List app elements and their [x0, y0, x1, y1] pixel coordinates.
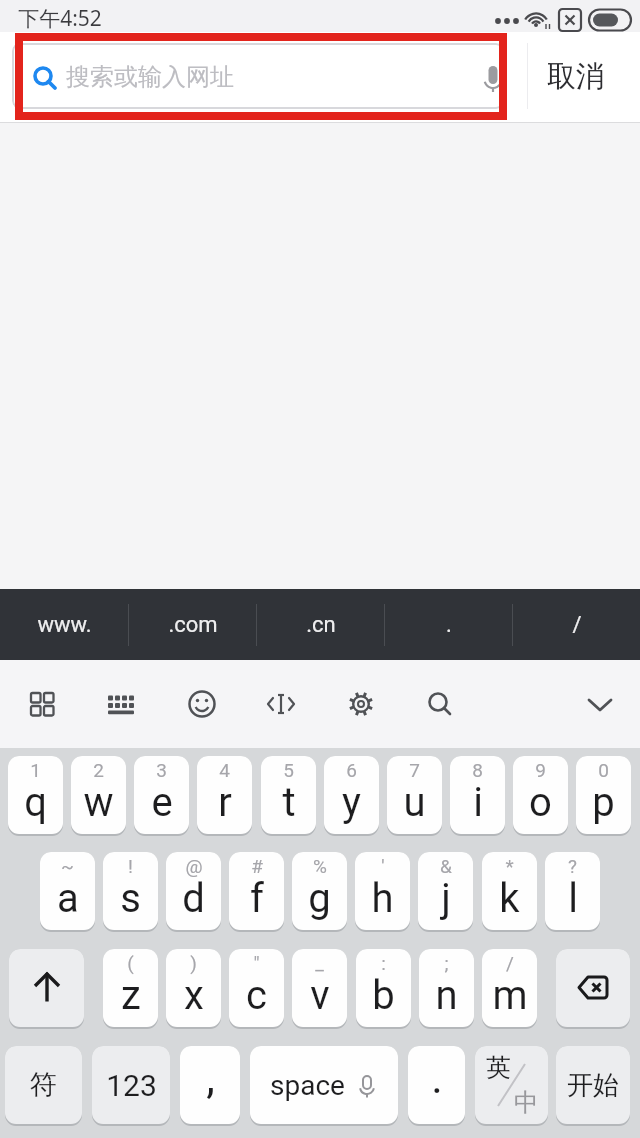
button[interactable]: 取消 — [527, 43, 624, 109]
button[interactable]: 开始 — [556, 1046, 630, 1124]
button[interactable]: 123 — [92, 1046, 170, 1124]
staticText: 取消 — [547, 58, 605, 95]
staticText: a — [57, 875, 79, 922]
button[interactable]: 7 — [387, 756, 442, 834]
button[interactable]: 2 — [71, 756, 126, 834]
button[interactable]: ( — [103, 949, 158, 1027]
staticText: d — [182, 875, 205, 922]
staticText: ( — [127, 952, 134, 974]
button[interactable]: ' — [355, 852, 410, 930]
staticText: 123 — [106, 1068, 157, 1103]
button[interactable]: 5 — [261, 756, 316, 834]
button[interactable]: 1 — [8, 756, 63, 834]
staticText: ! — [128, 855, 133, 877]
staticText: c — [246, 972, 267, 1019]
staticText: n — [435, 972, 458, 1019]
button[interactable]: 6 — [324, 756, 379, 834]
button[interactable]: " — [229, 949, 284, 1027]
staticText: q — [24, 779, 47, 826]
staticText: @ — [185, 855, 203, 877]
staticText: & — [440, 855, 452, 877]
button[interactable]: .com — [129, 589, 256, 660]
staticText: z — [121, 972, 141, 1019]
staticText: ) — [190, 952, 197, 974]
button[interactable]: 9 — [513, 756, 568, 834]
staticText: p — [592, 779, 615, 826]
button[interactable]: 8 — [450, 756, 505, 834]
button[interactable]: ) — [166, 949, 221, 1027]
button[interactable] — [335, 678, 387, 730]
staticText: 5 — [283, 759, 294, 781]
staticText: 7 — [409, 759, 420, 781]
button[interactable]: 符 — [5, 1046, 82, 1124]
button[interactable]: & — [418, 852, 473, 930]
button[interactable]: ; — [419, 949, 474, 1027]
staticText: e — [151, 779, 173, 826]
staticText: g — [308, 875, 331, 922]
button[interactable]: * — [482, 852, 537, 930]
button[interactable]: ~ — [40, 852, 95, 930]
button[interactable]: @ — [166, 852, 221, 930]
button[interactable]: # — [229, 852, 284, 930]
button[interactable]: / — [482, 949, 537, 1027]
staticText: 6 — [346, 759, 357, 781]
staticText: # — [251, 855, 263, 877]
staticText: s — [120, 875, 141, 922]
staticText: t — [282, 779, 296, 826]
button[interactable]: . — [408, 1046, 465, 1124]
staticText: / — [572, 612, 582, 638]
button[interactable] — [17, 678, 69, 730]
staticText: 9 — [535, 759, 546, 781]
staticText: www. — [37, 612, 92, 638]
button[interactable]: www. — [0, 589, 128, 660]
staticText: b — [372, 972, 395, 1019]
button[interactable]: 4 — [197, 756, 252, 834]
button[interactable] — [176, 678, 228, 730]
button[interactable]: space — [250, 1046, 398, 1124]
button[interactable] — [95, 678, 147, 730]
staticText: ' — [381, 855, 385, 877]
staticText: _ — [315, 952, 324, 974]
button[interactable]: 0 — [576, 756, 631, 834]
button[interactable]: , — [180, 1046, 240, 1124]
staticText: y — [342, 779, 361, 826]
staticText: . — [446, 612, 452, 638]
staticText: " — [253, 952, 260, 974]
button[interactable]: .cn — [257, 589, 384, 660]
button[interactable]: ! — [103, 852, 158, 930]
staticText: o — [529, 779, 552, 826]
staticText: / — [506, 952, 514, 974]
staticText: 0 — [598, 759, 609, 781]
staticText: h — [371, 875, 394, 922]
button[interactable]: 3 — [134, 756, 189, 834]
staticText: * — [505, 855, 514, 877]
button[interactable]: / — [513, 589, 640, 660]
button[interactable] — [556, 949, 630, 1027]
staticText: : — [381, 952, 386, 974]
button[interactable]: : — [356, 949, 411, 1027]
staticText: l — [568, 875, 578, 922]
staticText: x — [184, 972, 204, 1019]
staticText: u — [403, 779, 426, 826]
staticText: 1 — [30, 759, 41, 781]
staticText: j — [441, 875, 451, 922]
button[interactable]: _ — [292, 949, 347, 1027]
button[interactable]: 英 — [475, 1046, 548, 1124]
staticText: ~ — [61, 855, 74, 877]
button[interactable] — [574, 678, 626, 730]
button[interactable]: ? — [545, 852, 600, 930]
staticText: i — [473, 779, 483, 826]
button[interactable]: . — [385, 589, 512, 660]
staticText: 2 — [93, 759, 104, 781]
staticText: . — [431, 1052, 443, 1104]
staticText: 3 — [156, 759, 167, 781]
button[interactable] — [255, 678, 307, 730]
staticText: 开始 — [567, 1069, 619, 1102]
staticText: ; — [444, 952, 449, 974]
button[interactable]: 搜索或输入网址 — [12, 43, 504, 109]
staticText: 下午4:52 — [18, 4, 102, 33]
staticText: 中 — [514, 1087, 539, 1118]
button[interactable] — [9, 949, 84, 1027]
button[interactable]: % — [292, 852, 347, 930]
button[interactable] — [414, 678, 466, 730]
